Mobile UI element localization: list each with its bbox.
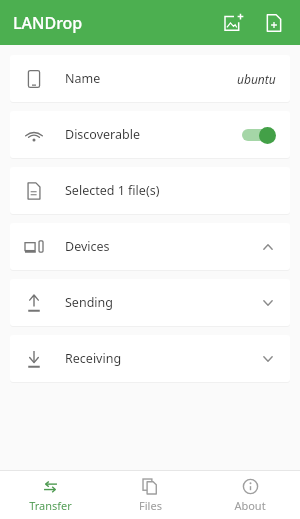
button[interactable]: Discoverable toggle	[242, 125, 276, 145]
button[interactable]: Selected 1 file(s)	[10, 167, 290, 214]
staticText: ubuntu	[237, 71, 276, 87]
button[interactable]: Sending	[10, 279, 290, 326]
staticText: Receiving	[65, 350, 122, 367]
button[interactable]: Files	[100, 471, 200, 519]
staticText: Sending	[65, 294, 113, 311]
button[interactable]: Add image	[214, 3, 254, 43]
button[interactable]: Transfer	[0, 471, 100, 519]
button[interactable]: Name	[10, 55, 290, 102]
button[interactable]: About	[200, 471, 300, 519]
button[interactable]: Devices	[10, 223, 290, 270]
staticText: Discoverable	[65, 126, 140, 143]
staticText: Name	[65, 70, 101, 87]
button[interactable]: Discoverable	[10, 111, 290, 158]
staticText: Files	[139, 498, 162, 513]
staticText: Transfer	[29, 498, 72, 513]
staticText: Devices	[65, 238, 110, 255]
staticText: LANDrop	[13, 12, 83, 34]
button[interactable]: Add file	[254, 3, 294, 43]
button[interactable]: Receiving	[10, 335, 290, 382]
staticText: About	[234, 498, 266, 513]
staticText: Selected 1 file(s)	[65, 182, 160, 199]
